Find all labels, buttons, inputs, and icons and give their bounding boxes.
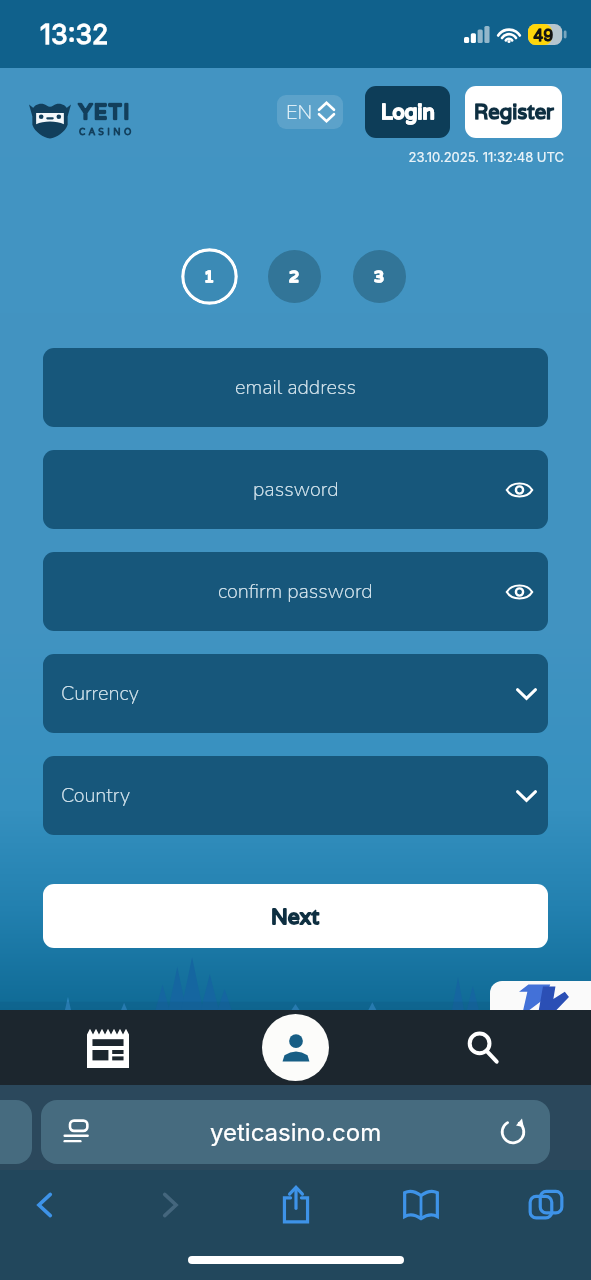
- staticText: YETI: [79, 99, 132, 125]
- staticText: EN: [286, 99, 313, 126]
- staticText: 3: [374, 266, 385, 287]
- button[interactable]: EN: [277, 95, 343, 129]
- staticText: 49: [533, 25, 554, 44]
- button[interactable]: Register: [465, 86, 562, 138]
- staticText: 2: [289, 266, 300, 287]
- button[interactable]: 1: [181, 248, 238, 305]
- staticText: Next: [271, 903, 320, 930]
- staticText: Register: [474, 99, 554, 125]
- button[interactable]: 2: [268, 250, 321, 303]
- button[interactable]: Back: [14, 1174, 76, 1236]
- staticText: Country: [61, 782, 130, 809]
- button[interactable]: Show password: [497, 570, 541, 614]
- staticText: CASINO: [79, 126, 135, 138]
- button[interactable]: Login: [365, 86, 450, 138]
- button[interactable]: Forward: [139, 1174, 201, 1236]
- staticText: Login: [381, 99, 435, 125]
- staticText: 23.10.2025. 11:32:48 UTC: [0, 149, 564, 165]
- staticText: YETI: [79, 99, 132, 125]
- button[interactable]: Search: [451, 1010, 514, 1085]
- button[interactable]: Country: [43, 756, 548, 835]
- staticText: 1: [204, 266, 215, 287]
- button[interactable]: Bookmarks: [390, 1174, 452, 1236]
- staticText: Next: [271, 903, 320, 930]
- staticText: 3: [374, 266, 385, 287]
- button[interactable]: Show password: [497, 468, 541, 512]
- staticText: yeticasino.com: [210, 1118, 382, 1147]
- staticText: Login: [381, 99, 435, 125]
- button[interactable]: News: [76, 1010, 139, 1085]
- staticText: Register: [474, 99, 554, 125]
- staticText: confirm password: [218, 578, 373, 605]
- button[interactable]: 3: [353, 250, 406, 303]
- button[interactable]: email address: [43, 348, 548, 427]
- staticText: CASINO: [79, 126, 135, 138]
- staticText: 13:32: [40, 18, 109, 51]
- staticText: password: [253, 476, 339, 503]
- staticText: email address: [235, 374, 357, 401]
- staticText: 2: [289, 266, 300, 287]
- button[interactable]: password: [43, 450, 548, 529]
- staticText: 49: [533, 25, 554, 44]
- button[interactable]: Currency: [43, 654, 548, 733]
- button[interactable]: Next: [43, 884, 548, 948]
- button[interactable]: Tabs: [515, 1174, 577, 1236]
- button[interactable]: confirm password: [43, 552, 548, 631]
- button[interactable]: Account: [262, 1014, 329, 1081]
- staticText: Currency: [61, 680, 139, 707]
- button[interactable]: Chat support: [490, 981, 591, 1010]
- button[interactable]: yeticasino.com: [41, 1100, 550, 1164]
- button[interactable]: Share: [265, 1174, 327, 1236]
- staticText: 1: [204, 266, 215, 287]
